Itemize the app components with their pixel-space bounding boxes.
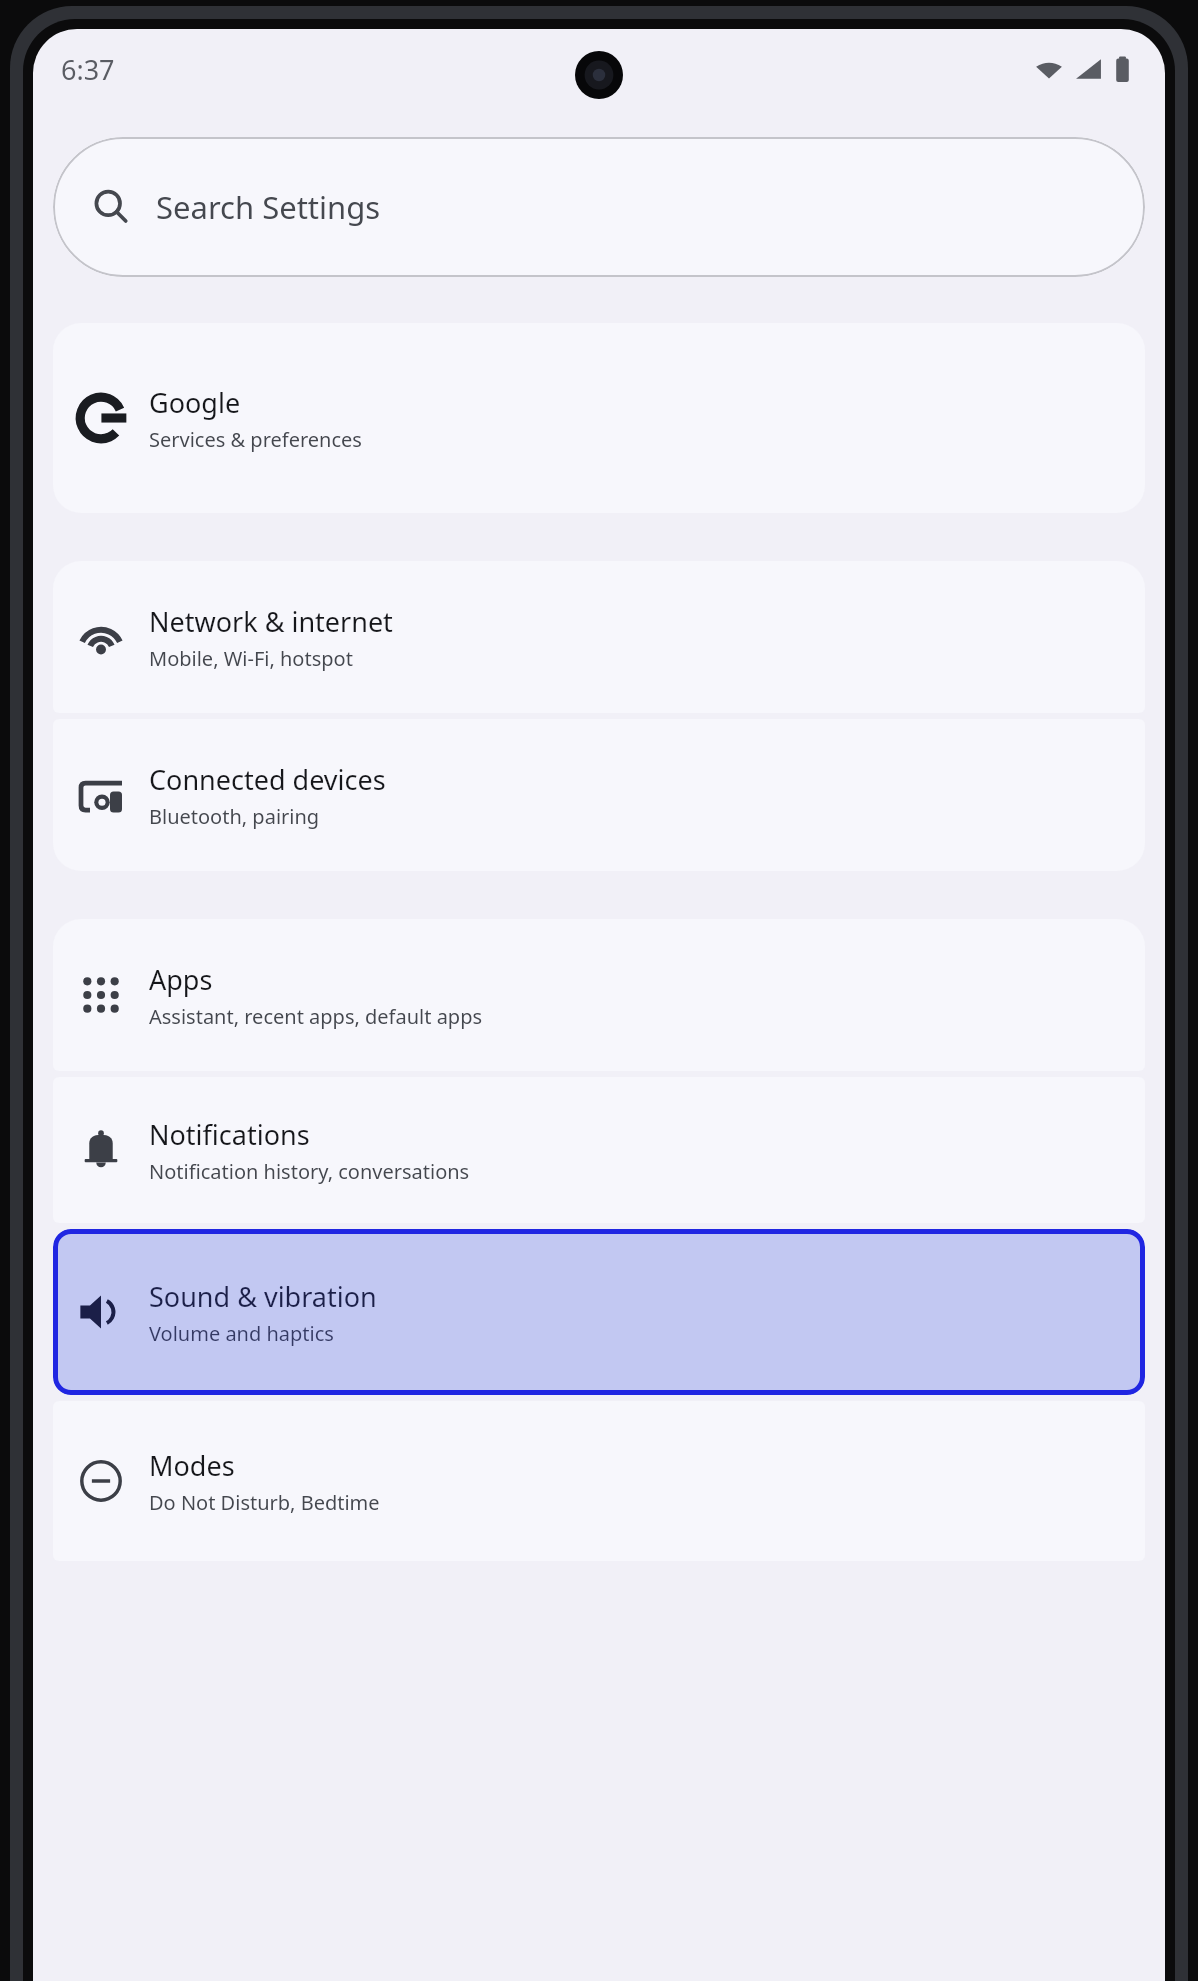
- staticText: Notification history, conversations: [149, 1158, 470, 1185]
- button[interactable]: Google: [53, 323, 1145, 513]
- button[interactable]: Notifications: [53, 1077, 1145, 1223]
- staticText: Notifications: [149, 1116, 310, 1153]
- staticText: Network & internet: [149, 603, 393, 640]
- button[interactable]: Sound & vibration: [53, 1229, 1145, 1395]
- staticText: Do Not Disturb, Bedtime: [149, 1489, 380, 1516]
- button[interactable]: Modes: [53, 1401, 1145, 1561]
- staticText: 6:37: [61, 51, 115, 88]
- staticText: Sound & vibration: [149, 1278, 377, 1315]
- staticText: Apps: [149, 961, 213, 998]
- staticText: Bluetooth, pairing: [149, 803, 320, 830]
- staticText: Google: [149, 384, 241, 421]
- staticText: Volume and haptics: [149, 1320, 334, 1347]
- button[interactable]: Apps: [53, 919, 1145, 1071]
- button[interactable]: Connected devices: [53, 719, 1145, 871]
- button[interactable]: Search Settings: [53, 137, 1145, 277]
- staticText: Assistant, recent apps, default apps: [149, 1003, 483, 1030]
- staticText: Services & preferences: [149, 426, 362, 453]
- staticText: Connected devices: [149, 761, 386, 798]
- staticText: Search Settings: [156, 186, 381, 228]
- staticText: Modes: [149, 1447, 235, 1484]
- button[interactable]: Network & internet: [53, 561, 1145, 713]
- staticText: Mobile, Wi-Fi, hotspot: [149, 645, 353, 672]
